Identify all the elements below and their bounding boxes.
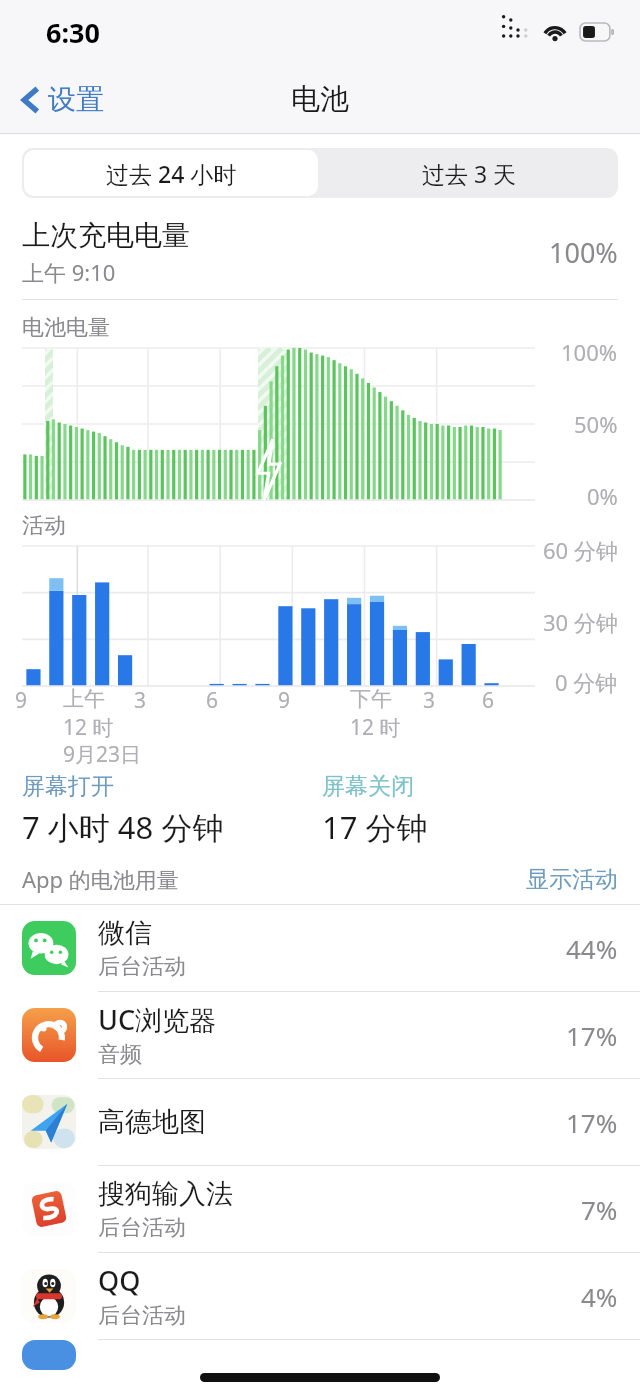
staticText: 17% (566, 1105, 618, 1140)
staticText: 上午 (63, 686, 544, 712)
staticText: 电池电量 (22, 314, 110, 342)
button[interactable]: QQ (0, 1253, 640, 1340)
staticText: 3 (134, 686, 615, 715)
staticText: 17 分钟 (322, 806, 428, 848)
staticText: 44% (566, 931, 618, 966)
staticText: 9 (278, 686, 640, 715)
staticText: 后台活动 (98, 1302, 186, 1330)
staticText: 0% (587, 481, 618, 511)
staticText: 6:30 (46, 14, 100, 51)
staticText: QQ (98, 1262, 141, 1299)
staticText: 30 分钟 (543, 607, 618, 637)
staticText: 屏幕打开 (22, 772, 114, 801)
staticText: 过去 3 天 (422, 158, 517, 189)
staticText: 屏幕关闭 (322, 772, 414, 801)
staticText: 50% (574, 409, 618, 439)
staticText: 设置 (48, 82, 104, 117)
staticText: 显示活动 (526, 865, 618, 894)
button[interactable]: 搜狗输入法 (0, 1166, 640, 1253)
staticText: 3 (423, 686, 640, 715)
staticText: 6 (482, 686, 640, 715)
staticText: 电池 (291, 81, 349, 118)
button[interactable]: 高德地图 (0, 1079, 640, 1166)
staticText: 60 分钟 (543, 535, 618, 565)
button[interactable]: 微信 (0, 905, 640, 992)
staticText: 音频 (98, 1041, 142, 1069)
button[interactable]: UC浏览器 (0, 992, 640, 1079)
button[interactable]: 显示活动 (526, 865, 618, 894)
staticText: 后台活动 (98, 1214, 186, 1242)
staticText: 0 分钟 (555, 667, 618, 697)
staticText: 17% (566, 1018, 618, 1053)
staticText: 上午 9:10 (22, 257, 116, 287)
staticText: 下午 (350, 686, 640, 712)
staticText: 12 时 (350, 713, 401, 742)
staticText: 上次充电电量 (22, 218, 190, 253)
button[interactable]: 过去 24 小时 (24, 150, 318, 196)
staticText: 100% (561, 337, 618, 367)
staticText: 6 (206, 686, 640, 715)
button[interactable] (22, 1340, 640, 1370)
staticText: 过去 24 小时 (106, 158, 237, 189)
staticText: 9 (15, 686, 496, 715)
staticText: 活动 (22, 512, 66, 540)
staticText: 高德地图 (98, 1105, 206, 1139)
staticText: 微信 (98, 916, 152, 950)
staticText: 12 时 (63, 713, 114, 742)
staticText: 4% (581, 1279, 618, 1314)
staticText: 9月23日 (63, 740, 142, 769)
staticText: 搜狗输入法 (98, 1177, 233, 1211)
button[interactable]: 过去 3 天 (320, 148, 618, 198)
button[interactable]: 上次充电电量 (0, 212, 640, 300)
button[interactable]: 设置 (14, 76, 112, 123)
staticText: 7 小时 48 分钟 (22, 806, 224, 848)
staticText: 7% (581, 1192, 618, 1227)
staticText: 后台活动 (98, 953, 186, 981)
staticText: App 的电池用量 (22, 864, 526, 894)
staticText: UC浏览器 (98, 1001, 217, 1038)
staticText: 100% (549, 234, 618, 271)
